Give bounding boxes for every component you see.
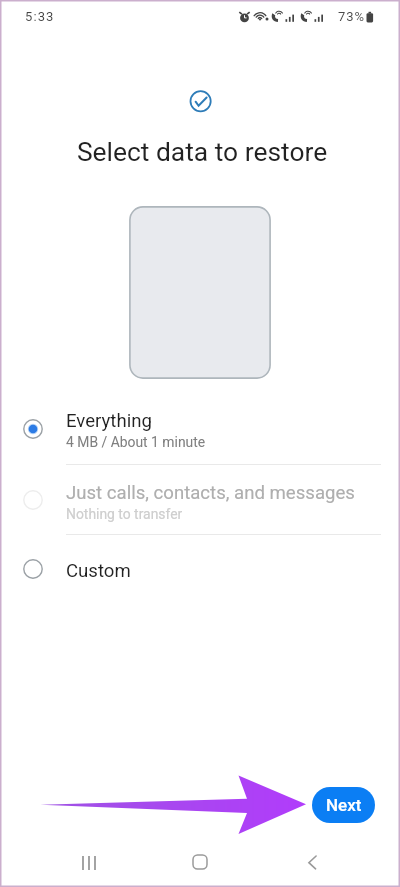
staticText: Everything [66, 410, 152, 432]
button[interactable]: Everything [0, 406, 400, 454]
staticText: 4 MB / About 1 minute [66, 434, 206, 450]
staticText: 5:33 [25, 9, 55, 24]
staticText: Just calls, contacts, and messages [66, 482, 355, 504]
button[interactable]: Next [312, 787, 375, 823]
staticText: Nothing to transfer [66, 506, 183, 522]
staticText: Custom [66, 560, 131, 582]
button[interactable]: Back [290, 842, 330, 882]
staticText: 73% [338, 9, 365, 24]
button[interactable]: Custom [0, 553, 400, 589]
staticText: Next [326, 795, 362, 815]
button[interactable]: Recent apps [69, 842, 109, 882]
button[interactable]: Home [180, 842, 220, 882]
staticText: Select data to restore [2, 137, 400, 168]
button[interactable]: Just calls, contacts, and messages [0, 478, 400, 526]
